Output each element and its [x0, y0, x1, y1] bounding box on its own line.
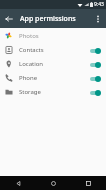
staticText: Location [19, 60, 89, 68]
button[interactable]: Back [0, 10, 17, 27]
staticText: Photos [19, 32, 39, 40]
button[interactable]: More options [89, 10, 106, 27]
button[interactable]: Home [36, 176, 71, 190]
staticText: Storage [19, 88, 89, 96]
button[interactable]: Phone [0, 71, 106, 85]
staticText: Phone [19, 74, 89, 82]
button[interactable]: Storage [0, 85, 106, 99]
staticText: 9:43 [94, 1, 104, 8]
button[interactable]: Back [0, 176, 36, 190]
staticText: Contacts [19, 46, 89, 54]
button[interactable]: Recent apps [71, 176, 106, 190]
staticText: App permissions [20, 14, 76, 24]
button[interactable]: Contacts [0, 43, 106, 57]
button[interactable]: Location [0, 57, 106, 71]
